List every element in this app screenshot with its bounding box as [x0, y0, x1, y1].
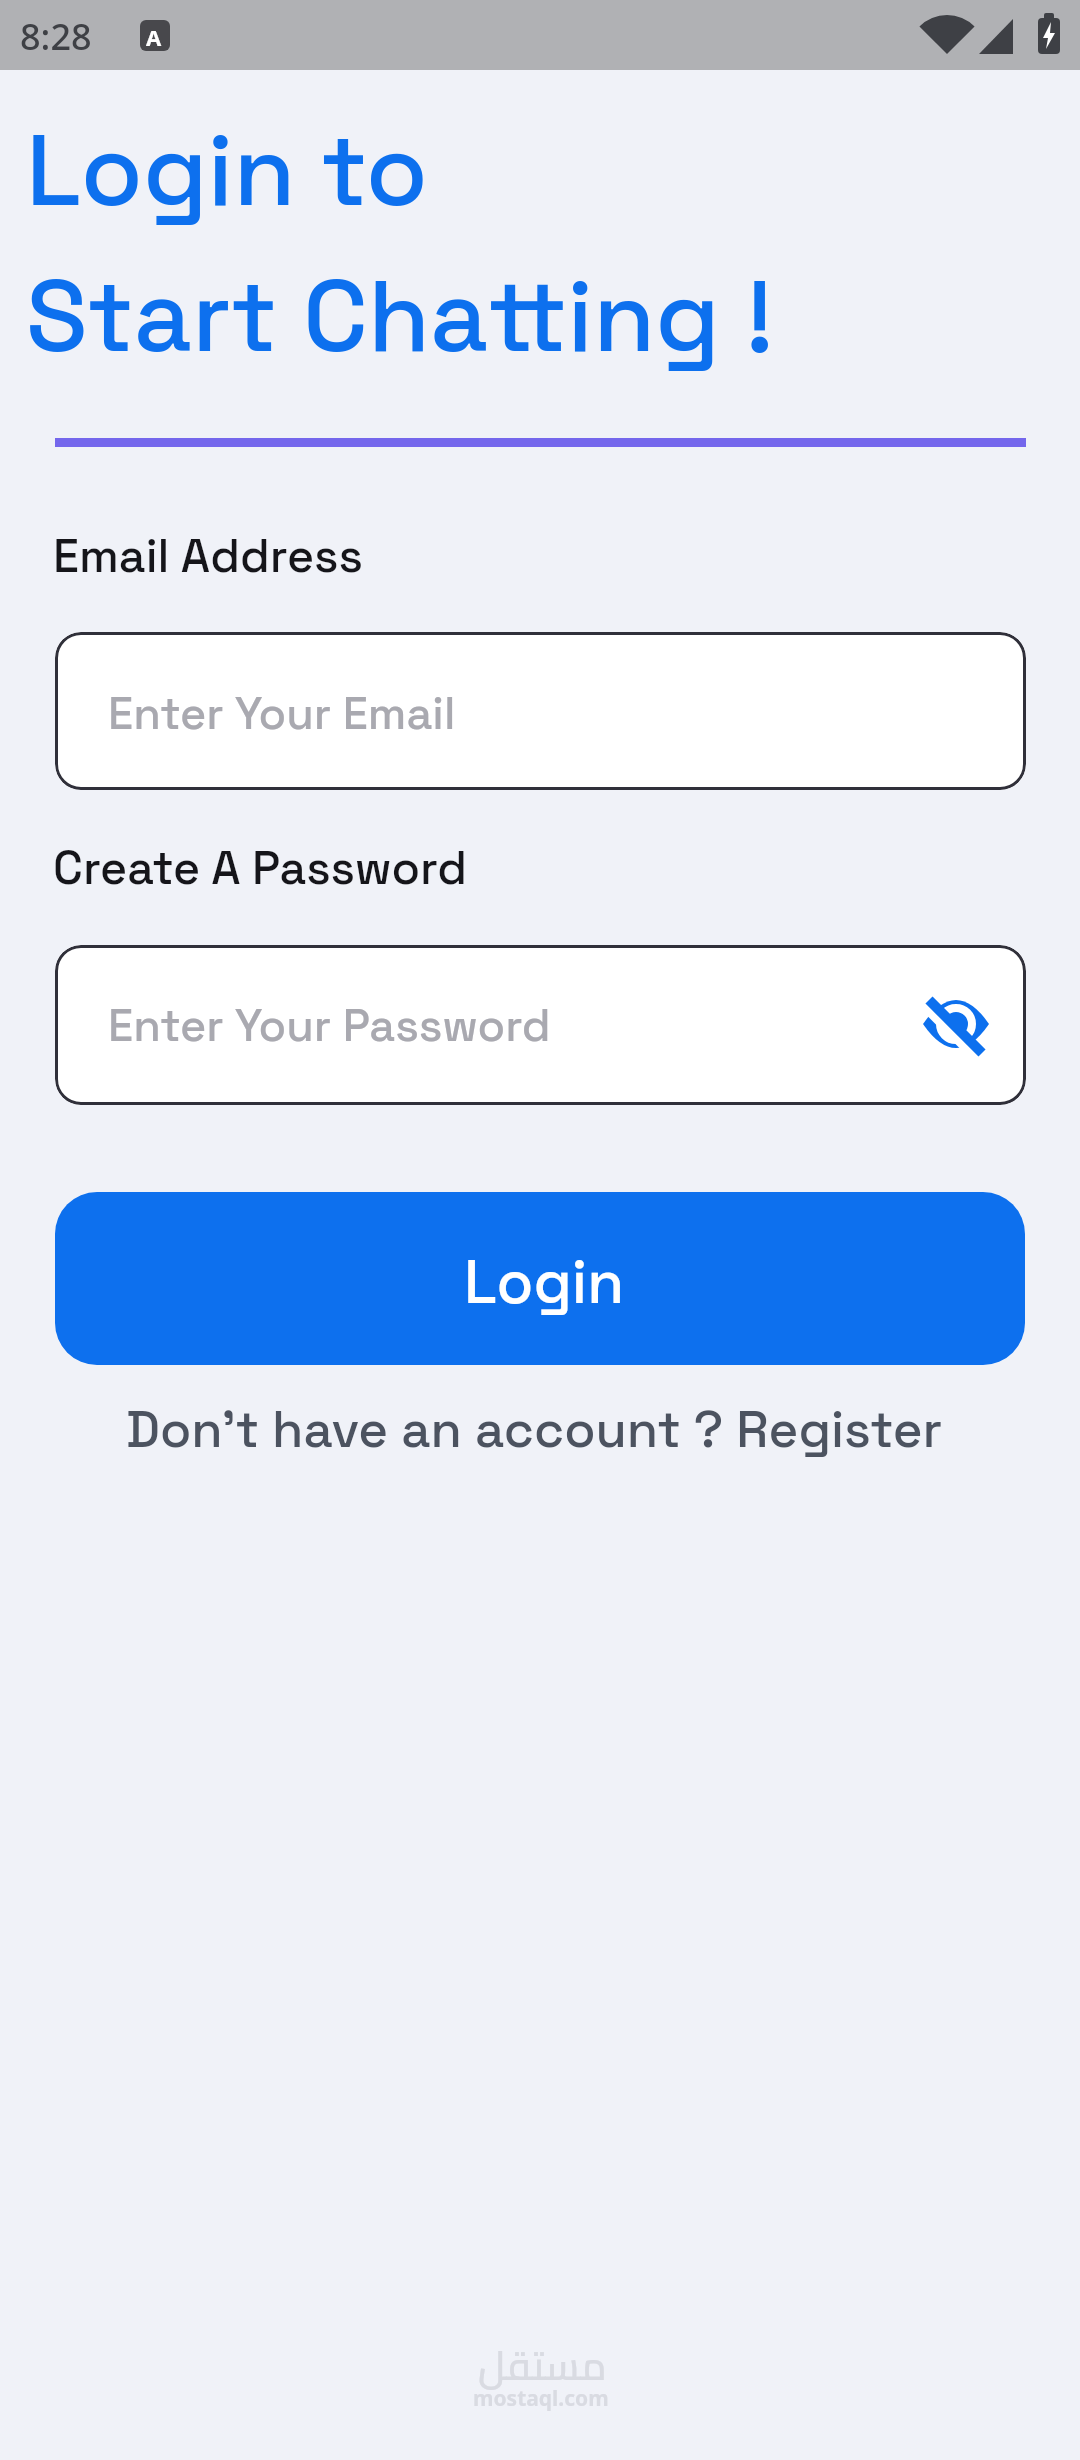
staticText: Email Address — [53, 526, 363, 585]
staticText: mostaql.com — [473, 2384, 609, 2413]
staticText: 8:28 — [20, 12, 92, 61]
staticText: مستقل — [478, 2328, 607, 2403]
staticText: Start Chatting ! — [26, 252, 774, 381]
staticText: Enter Your Email — [108, 685, 456, 742]
staticText: Don’t have an account ? Register — [126, 1397, 943, 1462]
staticText: A — [146, 22, 162, 52]
staticText: Enter Your Password — [108, 997, 551, 1054]
staticText: Login — [464, 1244, 625, 1321]
staticText: Create A Password — [53, 838, 467, 897]
staticText: Login to — [26, 106, 428, 235]
